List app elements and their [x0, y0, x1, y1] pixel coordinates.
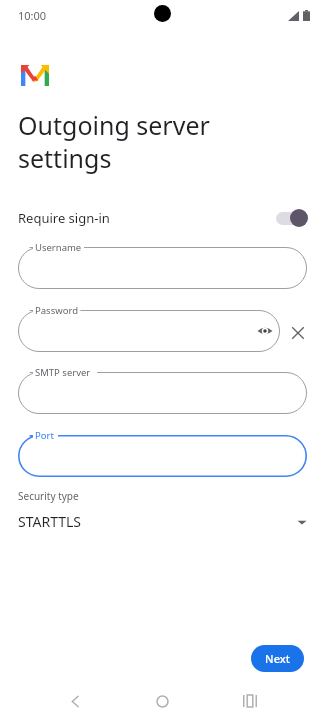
staticText: Password [35, 304, 78, 317]
button[interactable]: Show password [252, 318, 278, 344]
button[interactable]: Require sign-in [0, 203, 324, 233]
staticText: Next [265, 651, 290, 666]
staticText: SMTP server [35, 366, 91, 379]
button[interactable]: Security type [0, 489, 324, 537]
button[interactable]: SMTP server [18, 372, 307, 414]
staticText: Outgoing server settings [18, 108, 210, 175]
button[interactable]: Home [148, 687, 176, 715]
button[interactable]: Next [251, 645, 304, 672]
staticText: Require sign-in [18, 209, 110, 227]
button[interactable]: Recents [236, 687, 264, 715]
staticText: Username [35, 241, 82, 254]
button[interactable]: Clear password [286, 321, 310, 345]
staticText: Security type [18, 489, 79, 503]
staticText: 10:00 [18, 8, 47, 23]
button[interactable]: Back [61, 687, 89, 715]
button[interactable]: Port [18, 435, 307, 477]
button[interactable] [274, 208, 308, 228]
button[interactable]: Username [18, 247, 307, 289]
button[interactable]: Password [18, 310, 280, 352]
staticText: STARTTLS [18, 512, 82, 531]
staticText: Port [35, 429, 54, 442]
